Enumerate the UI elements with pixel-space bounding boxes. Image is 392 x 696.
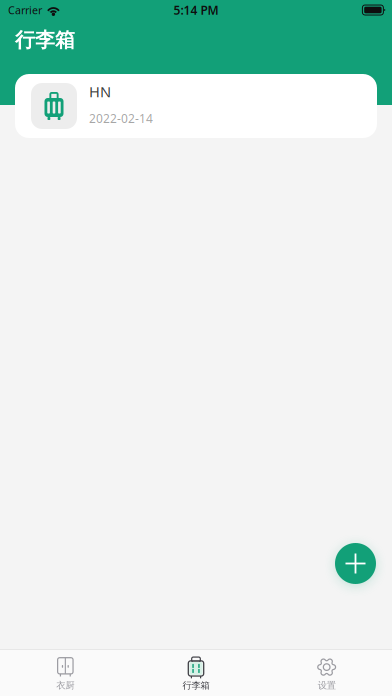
staticText: 设置	[318, 680, 336, 691]
staticText: 行李箱	[15, 28, 75, 52]
button[interactable]: 衣厨	[0, 650, 131, 696]
staticText: 衣厨	[56, 680, 74, 691]
staticText: 行李箱	[182, 680, 209, 691]
button[interactable]: 设置	[261, 650, 392, 696]
button[interactable]: 行李箱	[131, 650, 261, 696]
button[interactable]: Add	[335, 543, 376, 584]
staticText: 5:14 PM	[173, 2, 218, 18]
staticText: 2022-02-14	[89, 110, 153, 126]
staticText: HN	[89, 82, 111, 101]
staticText: Carrier	[8, 3, 42, 17]
button[interactable]: HN	[15, 74, 377, 138]
